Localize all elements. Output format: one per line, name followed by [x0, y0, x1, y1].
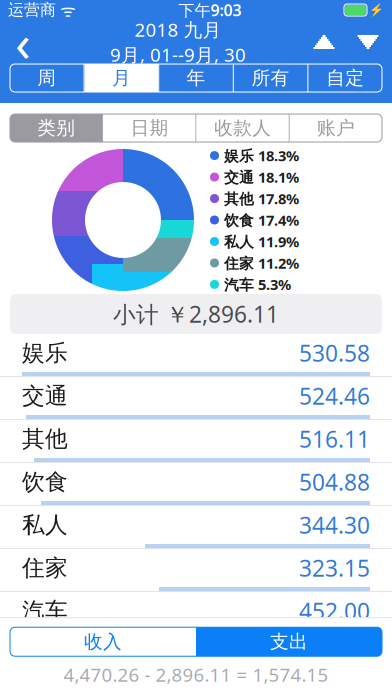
staticText: 娱乐 18.3%: [224, 146, 299, 165]
staticText: 交通: [22, 382, 68, 410]
staticText: 小计 ￥2,896.11: [113, 299, 279, 329]
button[interactable]: 饮食: [0, 463, 392, 506]
staticText: ‹: [15, 8, 31, 76]
button[interactable]: 月: [85, 64, 158, 92]
staticText: 4,470.26 - 2,896.11 = 1,574.15: [63, 662, 328, 687]
staticText: 娱乐: [22, 339, 68, 367]
button[interactable]: 住家: [0, 549, 392, 592]
staticText: 收入: [84, 630, 122, 653]
staticText: ⚡: [369, 3, 384, 17]
staticText: ᯤ: [60, 0, 76, 21]
button[interactable]: 交通: [0, 377, 392, 420]
staticText: 其他: [22, 425, 68, 453]
staticText: 524.46: [299, 381, 370, 411]
staticText: 自定: [326, 66, 364, 89]
staticText: 452.00: [299, 596, 370, 626]
staticText: 日期: [130, 116, 168, 139]
staticText: 344.30: [299, 510, 370, 540]
staticText: 住家 11.2%: [224, 253, 299, 273]
button[interactable]: 年: [159, 64, 233, 92]
button[interactable]: 娱乐: [0, 334, 392, 377]
staticText: 其他 17.8%: [224, 189, 299, 208]
button[interactable]: 类别: [10, 114, 102, 142]
staticText: 私人: [22, 511, 68, 539]
staticText: 饮食 17.4%: [224, 210, 299, 230]
button[interactable]: 账户: [290, 114, 382, 142]
staticText: 汽车 5.3%: [224, 275, 291, 294]
staticText: 账户: [317, 116, 355, 139]
staticText: 530.58: [299, 338, 370, 368]
button[interactable]: 收款人: [196, 114, 289, 142]
button[interactable]: 所有: [234, 64, 307, 92]
button[interactable]: 私人: [0, 506, 392, 549]
staticText: 323.15: [299, 553, 370, 583]
staticText: 所有: [252, 66, 290, 89]
staticText: 2018 九月: [134, 17, 221, 42]
staticText: 交通 18.1%: [224, 167, 299, 187]
button[interactable]: 周: [10, 64, 84, 92]
staticText: 下午9:03: [178, 0, 241, 21]
button[interactable]: 自定: [308, 64, 382, 92]
staticText: 运营商: [8, 0, 56, 20]
button[interactable]: 上一期: [310, 25, 338, 59]
staticText: 私人 11.9%: [224, 232, 299, 251]
button[interactable]: 下一期: [354, 25, 382, 59]
staticText: 支出: [270, 630, 308, 653]
staticText: 周: [37, 66, 56, 89]
staticText: 饮食: [22, 468, 68, 496]
staticText: 月: [112, 66, 131, 89]
staticText: 9月, 01--9月, 30: [110, 42, 246, 67]
staticText: 504.88: [299, 467, 370, 497]
staticText: 汽车: [22, 597, 68, 625]
button[interactable]: 支出: [196, 627, 382, 656]
button[interactable]: 日期: [103, 114, 195, 142]
button[interactable]: 收入: [10, 627, 196, 656]
staticText: 收款人: [214, 116, 271, 139]
staticText: 516.11: [299, 424, 370, 454]
staticText: 年: [186, 66, 205, 89]
button[interactable]: 其他: [0, 420, 392, 463]
staticText: 住家: [22, 554, 68, 582]
button[interactable]: 返回: [0, 20, 46, 64]
button[interactable]: 汽车: [0, 592, 392, 635]
staticText: 类别: [37, 116, 75, 139]
